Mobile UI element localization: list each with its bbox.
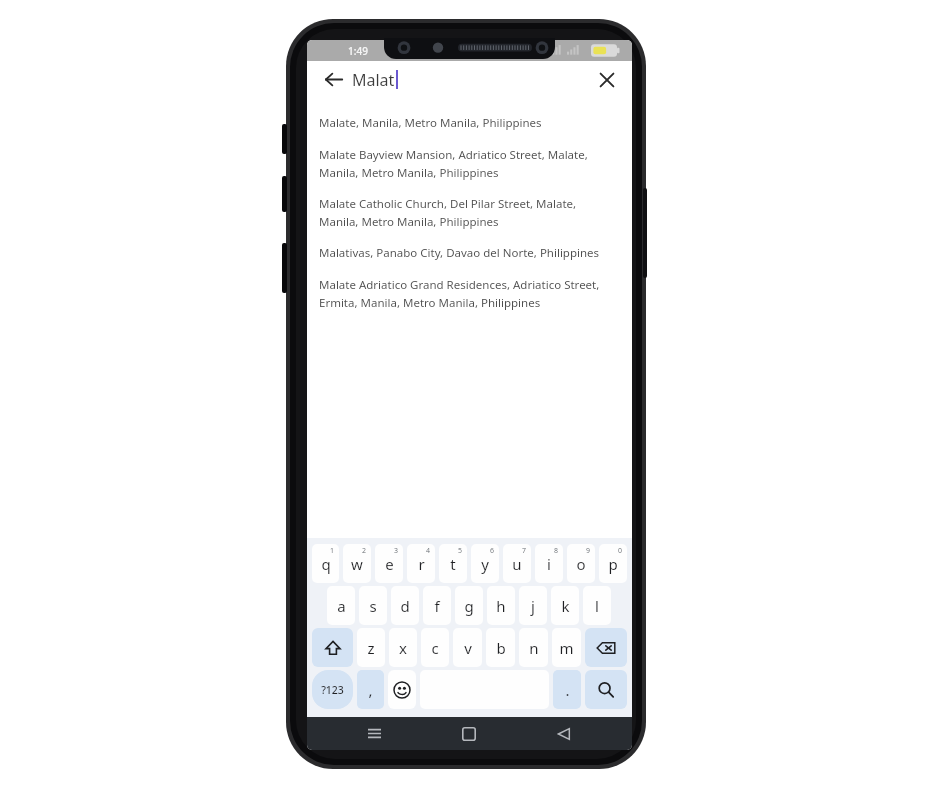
button[interactable]: v: [453, 628, 482, 667]
button[interactable]: n: [519, 628, 548, 667]
button[interactable]: k: [551, 586, 579, 625]
staticText: h: [496, 596, 506, 616]
button[interactable]: Back: [544, 717, 584, 750]
button[interactable]: Malate Bayview Mansion, Adriatico Street…: [307, 139, 632, 188]
staticText: j: [531, 596, 535, 616]
staticText: Malat: [352, 69, 395, 91]
button[interactable]: j: [519, 586, 547, 625]
staticText: Malate Bayview Mansion, Adriatico Street…: [319, 147, 613, 180]
button[interactable]: w: [343, 544, 371, 583]
button[interactable]: ,: [357, 670, 384, 709]
staticText: 3: [394, 546, 399, 556]
staticText: x: [399, 638, 407, 658]
button[interactable]: h: [487, 586, 515, 625]
staticText: 1:49: [348, 44, 368, 58]
button[interactable]: Clear search: [593, 66, 620, 93]
staticText: u: [512, 554, 522, 574]
button[interactable]: Malate Adriatico Grand Residences, Adria…: [307, 269, 632, 318]
staticText: 7: [522, 546, 527, 556]
staticText: d: [400, 596, 410, 616]
button[interactable]: x: [389, 628, 417, 667]
button[interactable]: z: [357, 628, 385, 667]
staticText: m: [559, 638, 574, 658]
button[interactable]: y: [471, 544, 499, 583]
staticText: Malate, Manila, Metro Manila, Philippine…: [319, 115, 542, 131]
button[interactable]: b: [486, 628, 515, 667]
button[interactable]: Home: [449, 717, 489, 750]
staticText: p: [608, 554, 618, 574]
staticText: g: [464, 596, 474, 616]
button[interactable]: Back: [320, 66, 347, 93]
button[interactable]: r: [407, 544, 435, 583]
staticText: e: [385, 554, 394, 574]
staticText: b: [496, 638, 506, 658]
staticText: y: [481, 554, 489, 574]
staticText: 1: [330, 546, 335, 556]
button[interactable]: Emoji: [388, 670, 416, 709]
button[interactable]: q: [312, 544, 339, 583]
button[interactable]: o: [567, 544, 595, 583]
staticText: 8: [554, 546, 559, 556]
button[interactable]: a: [327, 586, 355, 625]
button[interactable]: Shift: [312, 628, 353, 667]
staticText: k: [561, 596, 570, 616]
staticText: ?123: [321, 683, 344, 697]
button[interactable]: f: [423, 586, 451, 625]
button[interactable]: Malat: [352, 61, 593, 98]
staticText: z: [367, 638, 375, 658]
staticText: f: [434, 596, 440, 616]
button[interactable]: Search: [585, 670, 627, 709]
staticText: t: [450, 554, 456, 574]
button[interactable]: c: [421, 628, 449, 667]
button[interactable]: t: [439, 544, 467, 583]
button[interactable]: Recents: [354, 717, 394, 750]
button[interactable]: i: [535, 544, 563, 583]
staticText: 9: [586, 546, 591, 556]
button[interactable]: g: [455, 586, 483, 625]
button[interactable]: l: [583, 586, 611, 625]
button[interactable]: Malativas, Panabo City, Davao del Norte,…: [307, 237, 632, 269]
button[interactable]: Malate Catholic Church, Del Pilar Street…: [307, 188, 632, 237]
staticText: o: [576, 554, 586, 574]
staticText: 2: [362, 546, 367, 556]
button[interactable]: Backspace: [585, 628, 627, 667]
staticText: r: [418, 554, 425, 574]
button[interactable]: u: [503, 544, 531, 583]
staticText: Malate Catholic Church, Del Pilar Street…: [319, 196, 613, 229]
staticText: v: [464, 638, 472, 658]
button[interactable]: Malate, Manila, Metro Manila, Philippine…: [307, 107, 632, 139]
staticText: 6: [490, 546, 495, 556]
staticText: s: [369, 596, 377, 616]
button[interactable]: s: [359, 586, 387, 625]
staticText: w: [351, 554, 363, 574]
staticText: 5: [458, 546, 463, 556]
staticText: l: [595, 596, 599, 616]
button[interactable]: ?123: [312, 670, 353, 709]
staticText: 0: [618, 546, 623, 556]
staticText: .: [565, 680, 570, 700]
staticText: n: [529, 638, 539, 658]
staticText: Malate Adriatico Grand Residences, Adria…: [319, 277, 613, 310]
button[interactable]: d: [391, 586, 419, 625]
staticText: a: [337, 596, 346, 616]
button[interactable]: .: [553, 670, 581, 709]
button[interactable]: m: [552, 628, 581, 667]
staticText: 4: [426, 546, 431, 556]
button[interactable]: e: [375, 544, 403, 583]
staticText: c: [431, 638, 439, 658]
staticText: q: [321, 554, 331, 574]
staticText: i: [547, 554, 551, 574]
staticText: ,: [368, 680, 373, 700]
button[interactable]: p: [599, 544, 627, 583]
staticText: Malativas, Panabo City, Davao del Norte,…: [319, 245, 600, 261]
